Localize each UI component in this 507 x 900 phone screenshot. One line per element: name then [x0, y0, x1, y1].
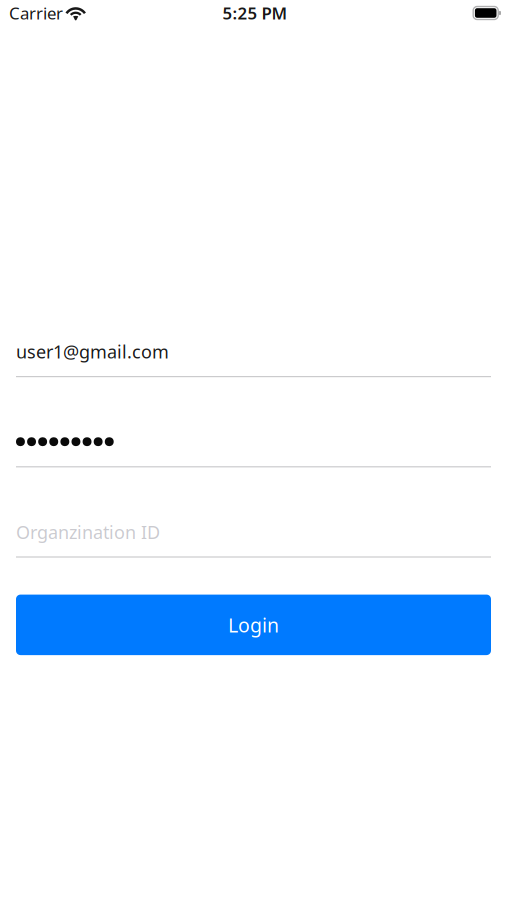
staticText: Organzination ID	[16, 520, 160, 544]
button[interactable]: Login	[16, 595, 491, 655]
staticText: user1@gmail.com	[16, 339, 169, 364]
button[interactable]: Organzination ID	[16, 523, 491, 558]
staticText: Login	[228, 612, 279, 638]
staticText: Carrier	[9, 2, 63, 24]
button[interactable]: Email	[16, 343, 491, 377]
button[interactable]: Password	[16, 433, 491, 467]
staticText: 5:25 PM	[222, 2, 287, 24]
